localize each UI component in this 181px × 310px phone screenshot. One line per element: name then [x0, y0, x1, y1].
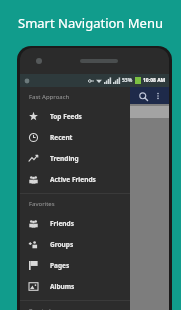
staticText: 10:08 AM: [143, 77, 166, 84]
staticText: Groups: [50, 240, 74, 249]
button[interactable]: Search: [135, 88, 151, 104]
button[interactable]: Pages: [20, 255, 130, 276]
button[interactable]: Friends: [20, 213, 130, 234]
staticText: Pages: [50, 261, 70, 270]
button[interactable]: Groups: [20, 234, 130, 255]
staticText: Favorites: [29, 200, 55, 208]
staticText: 53%: [122, 77, 133, 84]
button[interactable]: Albums: [20, 276, 130, 297]
staticText: Top Feeds: [50, 112, 82, 121]
staticText: Recent: [50, 133, 73, 142]
button[interactable]: Trending: [20, 148, 130, 169]
staticText: Albums: [50, 282, 75, 291]
button[interactable]: Recent: [20, 127, 130, 148]
staticText: Reminders: [29, 307, 60, 310]
staticText: Trending: [50, 154, 79, 163]
staticText: Friends: [50, 219, 74, 228]
staticText: Story: [26, 307, 39, 310]
staticText: Fast Approach: [29, 93, 70, 101]
button[interactable]: Active Friends: [20, 169, 130, 190]
staticText: Active Friends: [50, 175, 96, 184]
staticText: Smart Navigation Menu: [18, 14, 163, 32]
button[interactable]: Top Feeds: [20, 106, 130, 127]
button[interactable]: More options: [151, 89, 165, 103]
